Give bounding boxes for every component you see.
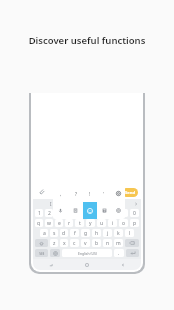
button[interactable]: w (45, 219, 53, 227)
button[interactable]: e (55, 219, 63, 227)
button[interactable]: s (50, 229, 58, 237)
button[interactable]: Clipboard (68, 202, 83, 219)
button[interactable]: h (92, 229, 101, 237)
button[interactable]: 9 (119, 209, 128, 217)
staticText: g (84, 230, 88, 237)
button[interactable]: Enter (126, 249, 139, 257)
staticText: The (80, 201, 88, 207)
button[interactable]: Attach (36, 186, 47, 197)
button[interactable]: c (70, 239, 79, 247)
staticText: x (63, 240, 66, 247)
button[interactable]: d (60, 229, 68, 237)
staticText: y (89, 220, 92, 227)
staticText: . (118, 250, 120, 257)
button[interactable]: x (60, 239, 68, 247)
button[interactable]: q (35, 219, 43, 227)
button[interactable]: 6 (86, 209, 95, 217)
button[interactable]: ? (68, 185, 83, 202)
staticText: ? (75, 191, 77, 197)
staticText: p (133, 220, 137, 227)
button[interactable]: b (92, 239, 101, 247)
staticText: Send (125, 190, 136, 196)
button[interactable]: You (100, 199, 133, 208)
button[interactable]: . (114, 249, 124, 257)
staticText: e (58, 220, 61, 227)
staticText: !#$ (39, 251, 45, 256)
button[interactable]: 5 (75, 209, 84, 217)
button[interactable]: English (US) (62, 249, 112, 257)
button[interactable]: Voice input (53, 202, 68, 219)
button[interactable]: f (70, 229, 79, 237)
button[interactable]: g (81, 229, 90, 237)
button[interactable]: 3 (55, 209, 63, 217)
staticText: Discover useful functions (0, 34, 174, 47)
staticText: 1 (38, 210, 41, 217)
staticText: r (68, 220, 71, 227)
button[interactable]: Shift (35, 239, 48, 247)
button[interactable]: ' (97, 185, 111, 202)
button[interactable]: i (108, 219, 117, 227)
staticText: t (79, 220, 81, 227)
button[interactable]: j (103, 229, 112, 237)
staticText: z (53, 240, 56, 247)
button[interactable]: I (35, 199, 67, 208)
staticText: 6 (89, 210, 92, 217)
button[interactable]: Back (105, 259, 141, 270)
button[interactable]: Stickers (97, 202, 111, 219)
staticText: I (50, 201, 52, 207)
staticText: ! (89, 191, 91, 197)
button[interactable]: k (114, 229, 123, 237)
button[interactable]: 8 (108, 209, 117, 217)
button[interactable]: y (86, 219, 95, 227)
staticText: , (60, 191, 62, 197)
button[interactable]: m (114, 239, 123, 247)
button[interactable]: o (119, 219, 128, 227)
button[interactable]: l (125, 229, 134, 237)
staticText: 0 (133, 210, 136, 217)
staticText: ' (103, 191, 105, 197)
staticText: w (47, 220, 51, 227)
button[interactable]: Backspace (125, 239, 139, 247)
button[interactable]: Recents (33, 259, 69, 270)
button[interactable]: 1 (35, 209, 43, 217)
staticText: h (95, 230, 99, 237)
button[interactable]: r (65, 219, 73, 227)
button[interactable]: Emoji (83, 202, 97, 219)
button[interactable]: The (67, 199, 100, 208)
button[interactable]: More suggestions (133, 199, 139, 208)
button[interactable]: Emoji (110, 187, 120, 197)
button[interactable]: p (130, 219, 139, 227)
staticText: o (122, 220, 126, 227)
staticText: 7 (100, 210, 103, 217)
button[interactable]: n (103, 239, 112, 247)
button[interactable]: ! (83, 185, 97, 202)
button[interactable]: Settings (111, 202, 125, 219)
button[interactable]: Home (69, 259, 105, 270)
button[interactable]: Send (122, 188, 138, 197)
staticText: f (74, 230, 76, 237)
button[interactable]: z (50, 239, 58, 247)
button[interactable]: Symbols (35, 249, 48, 257)
button[interactable]: 0 (130, 209, 139, 217)
button[interactable]: v (81, 239, 90, 247)
button[interactable]: , (53, 185, 68, 202)
button[interactable]: t (75, 219, 84, 227)
staticText: j (107, 230, 109, 237)
button[interactable]: At sign (111, 185, 125, 202)
button[interactable]: 2 (45, 209, 53, 217)
staticText: n (106, 240, 110, 247)
button[interactable]: 7 (97, 209, 106, 217)
button[interactable]: u (97, 219, 106, 227)
button[interactable]: a (40, 229, 48, 237)
staticText: 3 (58, 210, 61, 217)
staticText: k (117, 230, 120, 237)
staticText: i (112, 220, 114, 227)
button[interactable]: Keyboard settings (50, 249, 60, 257)
staticText: l (129, 230, 131, 237)
